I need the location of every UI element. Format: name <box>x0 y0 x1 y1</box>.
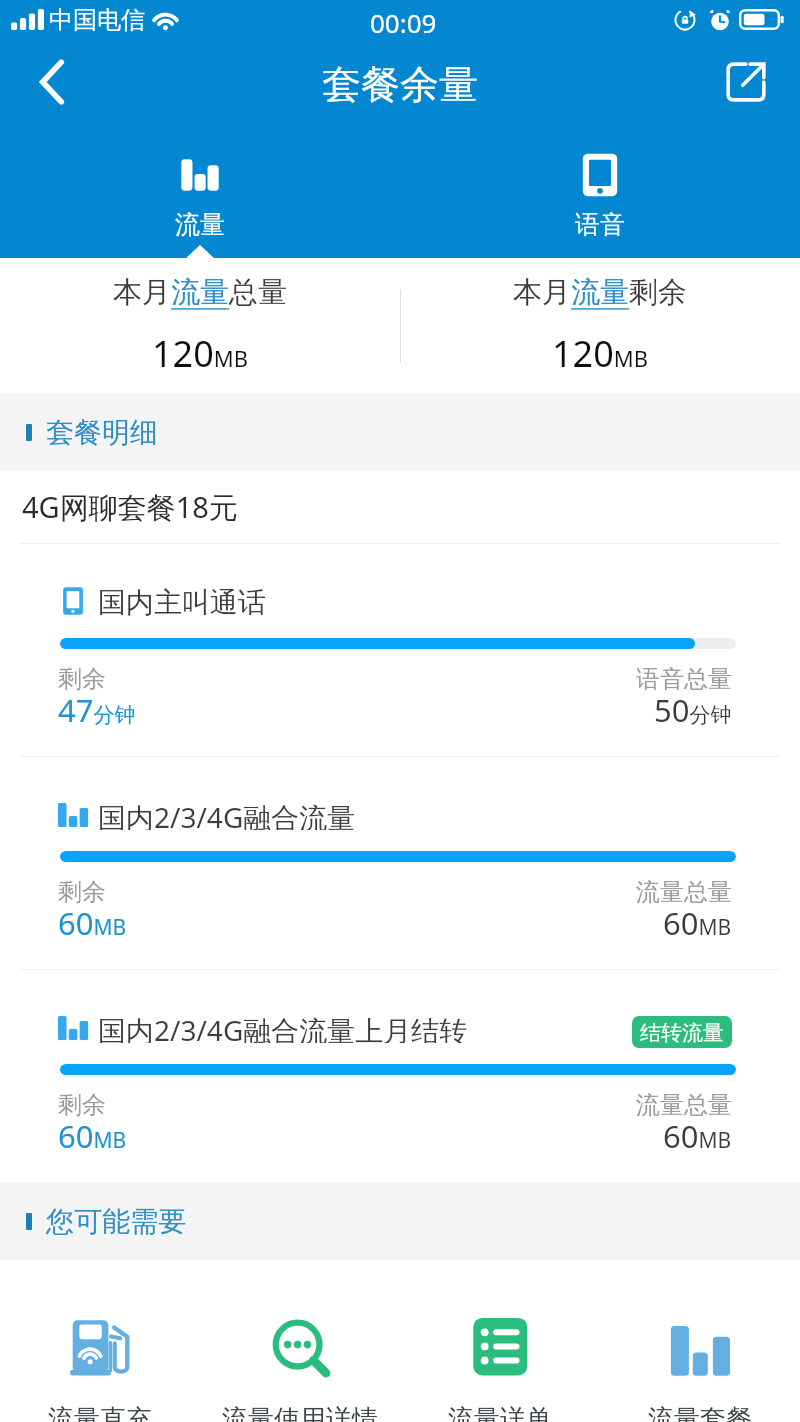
staticText: 本月流量剩余 <box>513 274 687 311</box>
button[interactable]: Share <box>714 50 778 114</box>
staticText: 60MB <box>58 902 127 944</box>
staticText: 剩余 <box>58 877 106 907</box>
button[interactable]: 流量直充 <box>0 1260 200 1422</box>
staticText: 流量总量 <box>636 1090 732 1120</box>
button[interactable]: 流量详单 <box>400 1260 600 1422</box>
button[interactable]: 国内2/3/4G融合流量 <box>0 757 800 969</box>
staticText: 剩余 <box>58 1090 106 1120</box>
staticText: 流量 <box>175 209 225 240</box>
staticText: 国内2/3/4G融合流量 <box>98 798 356 830</box>
staticText: 您可能需要 <box>46 1204 186 1239</box>
staticText: 120MB <box>552 329 649 378</box>
staticText: 套餐明细 <box>46 415 158 450</box>
staticText: 国内2/3/4G融合流量上月结转 <box>98 1011 468 1043</box>
staticText: 流量套餐 <box>648 1403 752 1422</box>
button[interactable]: 流量 <box>0 126 400 240</box>
staticText: 流量总量 <box>636 877 732 907</box>
staticText: 剩余 <box>58 664 106 694</box>
staticText: 本月流量总量 <box>113 274 287 311</box>
staticText: 中国电信 <box>49 5 145 35</box>
staticText: 语音 <box>575 209 625 240</box>
staticText: 语音总量 <box>636 664 732 694</box>
staticText: 47分钟 <box>58 689 136 731</box>
staticText: 流量直充 <box>48 1403 152 1422</box>
button[interactable]: 国内主叫通话 <box>0 544 800 756</box>
button[interactable]: 语音 <box>400 126 800 240</box>
staticText: 国内主叫通话 <box>98 585 266 617</box>
staticText: 00:09 <box>370 5 437 40</box>
staticText: 60MB <box>58 1115 127 1157</box>
button[interactable]: Back <box>20 50 84 114</box>
button[interactable]: 流量使用详情 <box>200 1260 400 1422</box>
staticText: 120MB <box>152 329 249 378</box>
staticText: 50分钟 <box>654 689 732 731</box>
staticText: 流量详单 <box>448 1403 552 1422</box>
button[interactable]: 流量套餐 <box>600 1260 800 1422</box>
staticText: 套餐余量 <box>322 60 478 109</box>
staticText: 结转流量 <box>640 1020 724 1044</box>
staticText: 流量使用详情 <box>222 1403 378 1422</box>
button[interactable]: 国内2/3/4G融合流量上月结转 <box>0 970 800 1182</box>
staticText: 60MB <box>663 1115 732 1157</box>
staticText: 4G网聊套餐18元 <box>22 487 238 527</box>
staticText: 60MB <box>663 902 732 944</box>
